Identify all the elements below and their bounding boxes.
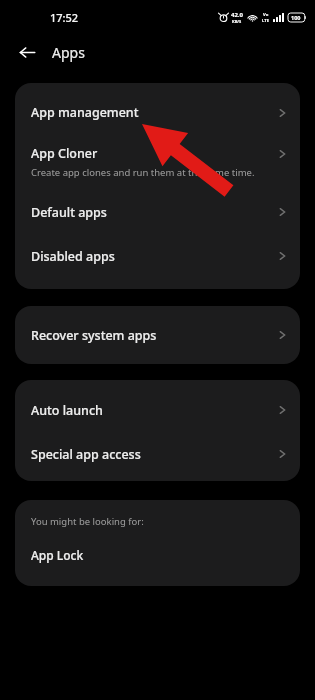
staticText: Auto launch: [31, 402, 103, 419]
staticText: App Lock: [31, 547, 84, 563]
button[interactable]: Special app access: [15, 432, 300, 476]
staticText: 42.0: [231, 11, 243, 19]
staticText: 100: [291, 14, 301, 21]
button[interactable]: Back: [12, 37, 42, 67]
staticText: Create app clones and run them at the sa…: [31, 166, 255, 179]
staticText: LTE: [262, 18, 270, 24]
staticText: Vo: [263, 12, 269, 18]
button[interactable]: Disabled apps: [15, 234, 300, 278]
staticText: Special app access: [31, 446, 141, 463]
staticText: You might be looking for:: [31, 515, 144, 528]
staticText: Apps: [52, 43, 85, 62]
staticText: Default apps: [31, 204, 107, 221]
button[interactable]: App management: [15, 91, 300, 134]
button[interactable]: App Cloner: [15, 134, 300, 190]
staticText: Recover system apps: [31, 327, 157, 344]
staticText: 17:52: [50, 10, 79, 25]
button[interactable]: Recover system apps: [15, 313, 300, 357]
button[interactable]: Auto launch: [15, 388, 300, 432]
staticText: App Cloner: [31, 145, 98, 162]
staticText: App management: [31, 104, 139, 121]
button[interactable]: Default apps: [15, 190, 300, 234]
staticText: KB/S: [232, 19, 242, 24]
button[interactable]: App Lock: [15, 545, 300, 565]
staticText: Disabled apps: [31, 248, 115, 265]
